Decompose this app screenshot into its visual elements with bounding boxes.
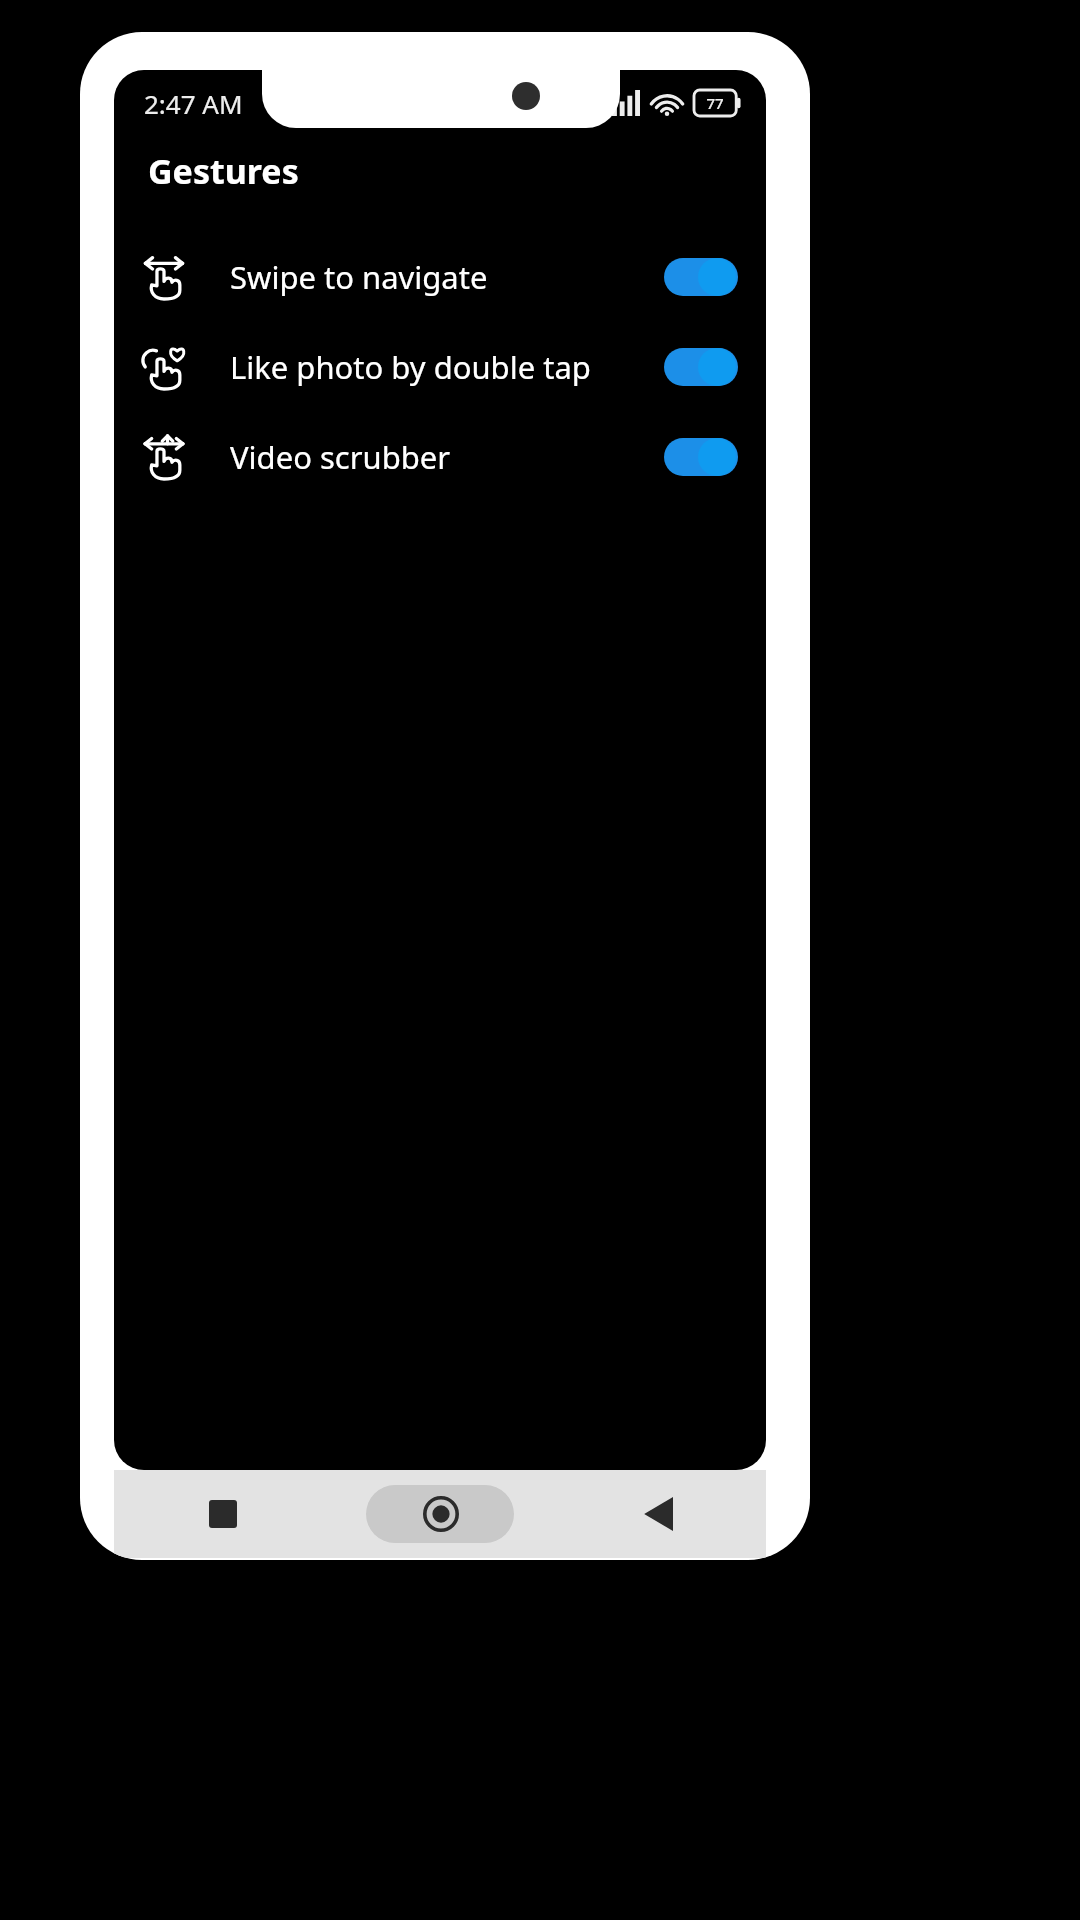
button[interactable]: Like photo by double tap bbox=[114, 322, 766, 412]
button[interactable]: Toggle on bbox=[664, 258, 738, 296]
button[interactable]: Toggle on bbox=[664, 348, 738, 386]
staticText: 2:47 AM bbox=[144, 86, 243, 121]
other: Video scrubber bbox=[142, 435, 186, 479]
other: Swipe to navigate bbox=[142, 255, 186, 299]
staticText: 77 bbox=[706, 93, 724, 113]
staticText: Video scrubber bbox=[230, 436, 451, 478]
button[interactable]: Swipe to navigate bbox=[114, 232, 766, 322]
staticText: Gestures bbox=[148, 148, 299, 194]
button[interactable]: Video scrubber bbox=[114, 412, 766, 502]
staticText: Like photo by double tap bbox=[230, 346, 591, 388]
button[interactable]: Home bbox=[332, 1470, 549, 1558]
button[interactable]: Back bbox=[549, 1470, 766, 1558]
staticText: Swipe to navigate bbox=[230, 256, 488, 298]
button[interactable]: Toggle on bbox=[664, 438, 738, 476]
button[interactable]: Recent apps bbox=[114, 1470, 332, 1558]
other: Like photo by double tap bbox=[142, 345, 186, 389]
